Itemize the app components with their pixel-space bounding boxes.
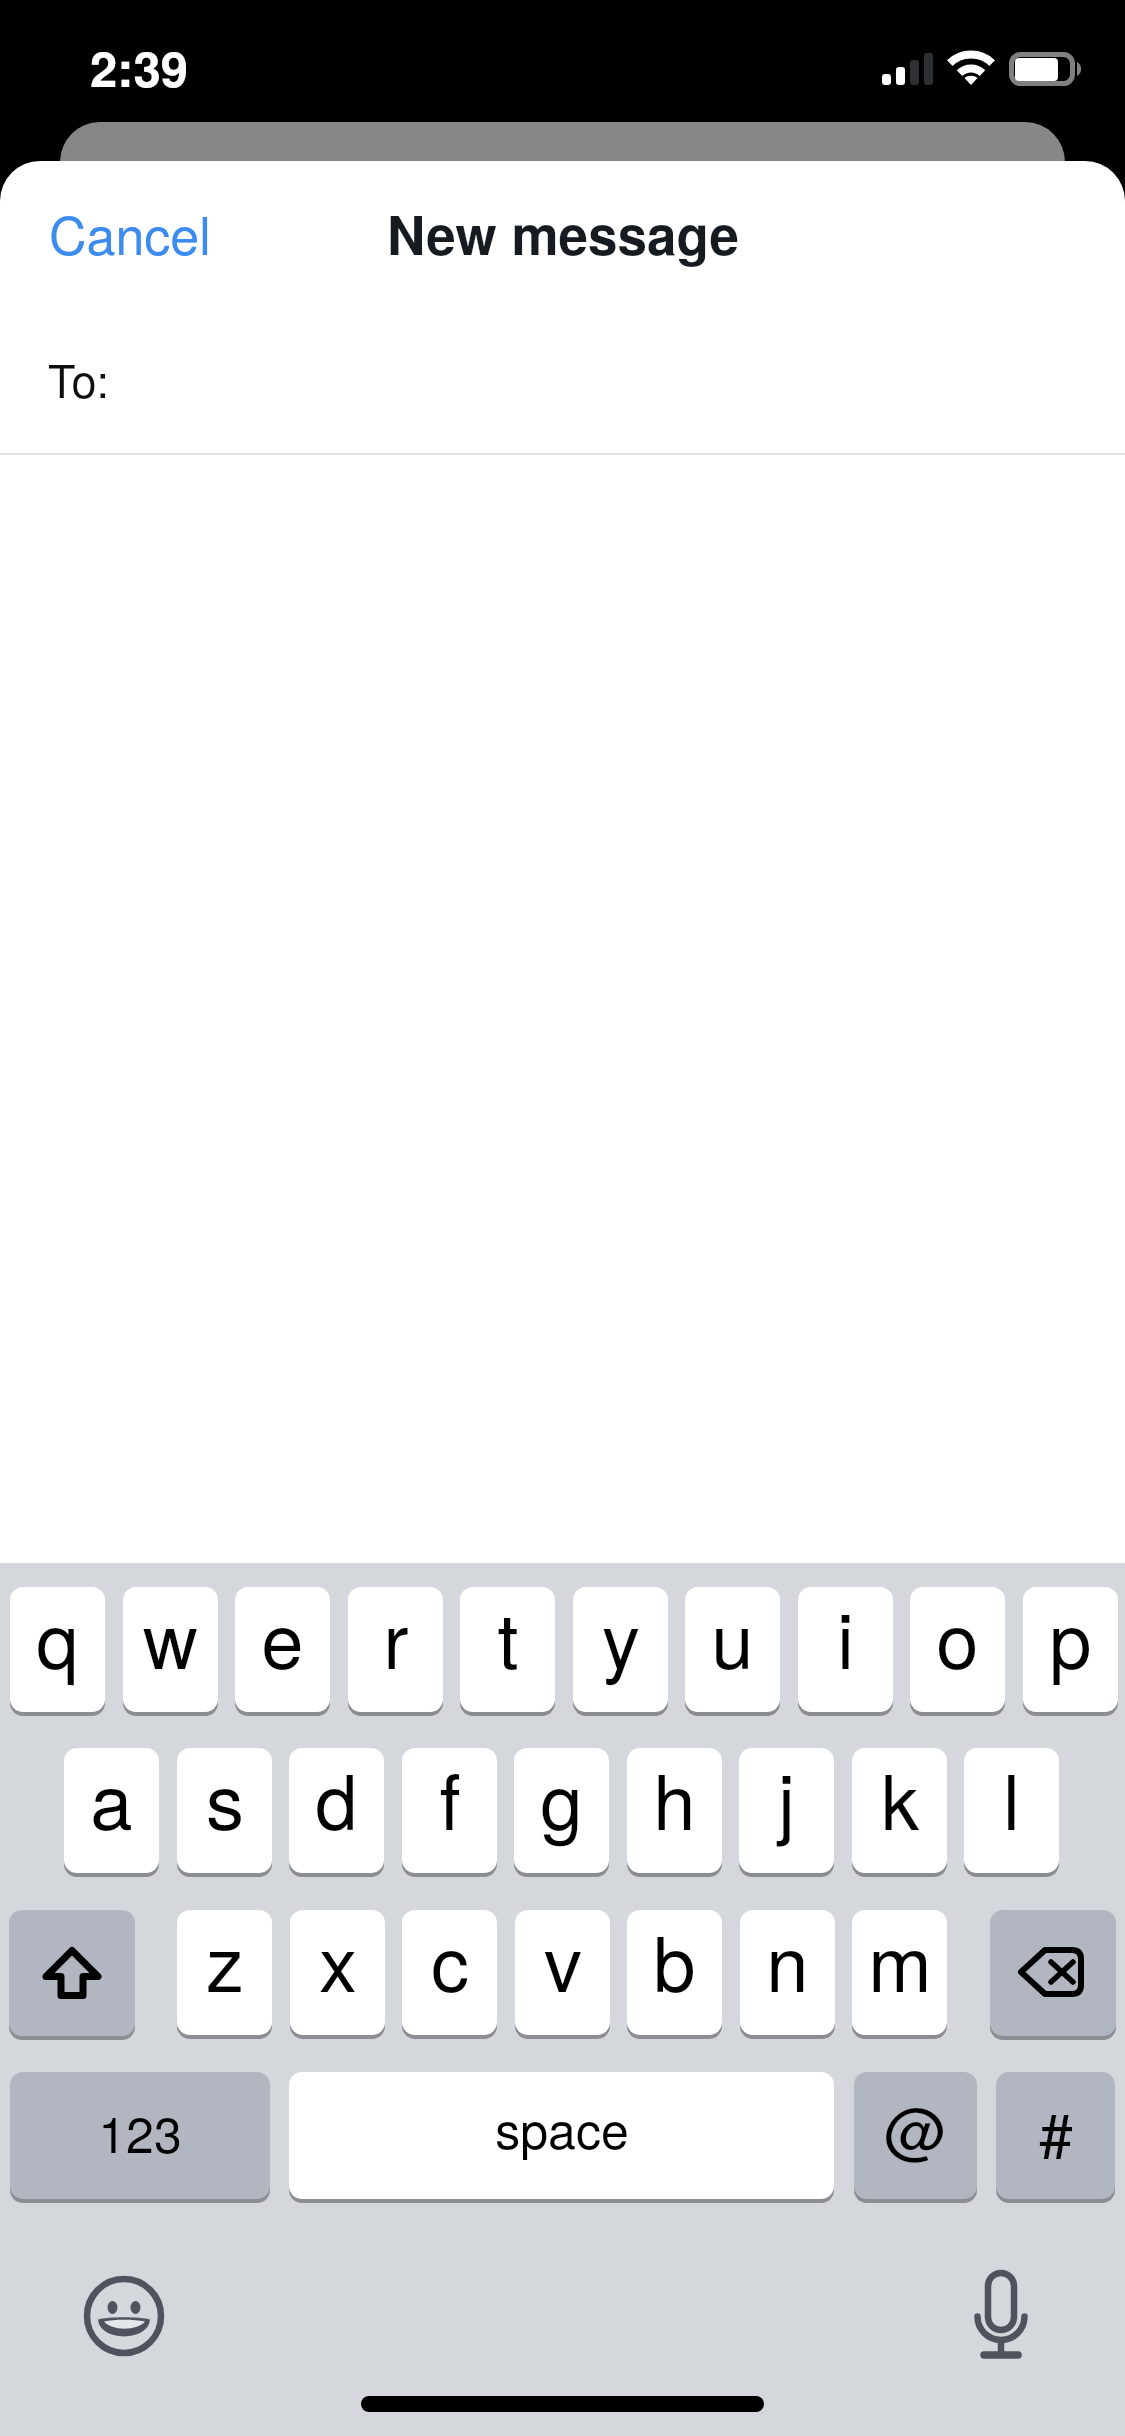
staticText: u bbox=[711, 1582, 754, 1691]
button[interactable]: y bbox=[573, 1587, 668, 1716]
staticText: t bbox=[497, 1582, 519, 1691]
button[interactable]: j bbox=[739, 1748, 834, 1877]
staticText: To: bbox=[48, 346, 109, 410]
staticText: 123 bbox=[98, 2096, 182, 2168]
button[interactable]: i bbox=[798, 1587, 893, 1716]
staticText: x bbox=[319, 1905, 357, 2014]
staticText: @ bbox=[884, 2083, 947, 2172]
staticText: f bbox=[439, 1743, 461, 1852]
button[interactable]: z bbox=[177, 1910, 272, 2039]
button[interactable]: u bbox=[685, 1587, 780, 1716]
button[interactable]: q bbox=[10, 1587, 105, 1716]
button[interactable]: g bbox=[514, 1748, 609, 1877]
button[interactable]: m bbox=[852, 1910, 947, 2039]
staticText: 2:39 bbox=[90, 32, 189, 102]
staticText: n bbox=[766, 1905, 809, 2014]
button[interactable]: a bbox=[64, 1748, 159, 1877]
button[interactable]: b bbox=[627, 1910, 722, 2039]
button[interactable]: Cancel bbox=[49, 195, 211, 269]
button[interactable]: Shift bbox=[9, 1910, 135, 2040]
staticText: o bbox=[936, 1582, 979, 1691]
staticText: Cancel bbox=[49, 195, 211, 269]
button[interactable]: Emoji keyboard bbox=[60, 2252, 188, 2380]
staticText: s bbox=[206, 1743, 244, 1852]
staticText: i bbox=[837, 1582, 854, 1691]
button[interactable]: p bbox=[1023, 1587, 1118, 1716]
staticText: g bbox=[540, 1743, 583, 1852]
button[interactable]: To: bbox=[0, 291, 1125, 453]
button[interactable]: h bbox=[627, 1748, 722, 1877]
staticText: b bbox=[653, 1905, 696, 2014]
button[interactable]: n bbox=[740, 1910, 835, 2039]
staticText: # bbox=[1039, 2088, 1073, 2175]
button[interactable]: v bbox=[515, 1910, 610, 2039]
staticText: a bbox=[90, 1743, 133, 1852]
button[interactable]: f bbox=[402, 1748, 497, 1877]
staticText: p bbox=[1049, 1582, 1092, 1691]
button[interactable]: d bbox=[289, 1748, 384, 1877]
button[interactable]: Dictation bbox=[937, 2252, 1065, 2380]
button[interactable]: s bbox=[177, 1748, 272, 1877]
button[interactable]: w bbox=[123, 1587, 218, 1716]
button[interactable]: Delete bbox=[990, 1910, 1116, 2040]
button[interactable]: l bbox=[964, 1748, 1059, 1877]
staticText: k bbox=[881, 1743, 919, 1852]
staticText: e bbox=[261, 1582, 304, 1691]
button[interactable]: r bbox=[348, 1587, 443, 1716]
button[interactable]: # bbox=[996, 2072, 1115, 2203]
staticText: y bbox=[602, 1582, 640, 1691]
staticText: l bbox=[1003, 1743, 1020, 1852]
button[interactable]: 123 bbox=[10, 2072, 270, 2203]
staticText: q bbox=[36, 1582, 79, 1691]
button[interactable]: o bbox=[910, 1587, 1005, 1716]
staticText: c bbox=[431, 1905, 469, 2014]
staticText: d bbox=[315, 1743, 358, 1852]
staticText: New message bbox=[387, 195, 739, 271]
button[interactable]: @ bbox=[854, 2072, 977, 2203]
staticText: v bbox=[544, 1905, 582, 2014]
staticText: j bbox=[778, 1743, 795, 1852]
button[interactable]: x bbox=[290, 1910, 385, 2039]
staticText: z bbox=[206, 1905, 244, 2014]
button[interactable]: k bbox=[852, 1748, 947, 1877]
staticText: h bbox=[653, 1743, 696, 1852]
button[interactable]: e bbox=[235, 1587, 330, 1716]
staticText: m bbox=[868, 1905, 932, 2014]
button[interactable]: t bbox=[460, 1587, 555, 1716]
staticText: space bbox=[495, 2092, 629, 2164]
button[interactable]: c bbox=[402, 1910, 497, 2039]
staticText: w bbox=[143, 1582, 198, 1691]
staticText: r bbox=[383, 1582, 409, 1691]
button[interactable]: space bbox=[289, 2072, 834, 2203]
